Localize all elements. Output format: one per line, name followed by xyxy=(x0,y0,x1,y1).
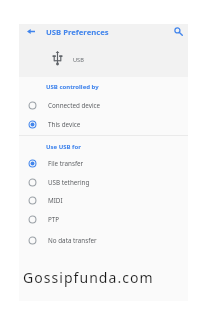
staticText: USB tethering xyxy=(48,178,90,187)
staticText: PTP xyxy=(48,215,60,224)
button[interactable]: File transfer xyxy=(19,154,188,173)
staticText: Gossipfunda.com xyxy=(23,268,154,287)
staticText: Connected device xyxy=(48,101,101,110)
button[interactable]: Search xyxy=(171,24,185,38)
staticText: MIDI xyxy=(48,196,63,205)
staticText: No data transfer xyxy=(48,236,97,245)
button[interactable]: PTP xyxy=(19,210,188,229)
staticText: USB xyxy=(73,56,84,64)
button[interactable]: No data transfer xyxy=(19,231,188,250)
staticText: This device xyxy=(48,120,81,129)
button[interactable]: USB tethering xyxy=(19,173,188,192)
button[interactable]: This device xyxy=(19,115,188,134)
button[interactable]: USB Preferences xyxy=(46,27,109,37)
button[interactable]: Connected device xyxy=(19,96,188,115)
button[interactable]: Use USB for xyxy=(46,143,81,151)
staticText: File transfer xyxy=(48,159,84,168)
button[interactable]: Back xyxy=(23,23,39,39)
button[interactable]: USB controlled by xyxy=(46,83,99,91)
button[interactable]: MIDI xyxy=(19,191,188,210)
